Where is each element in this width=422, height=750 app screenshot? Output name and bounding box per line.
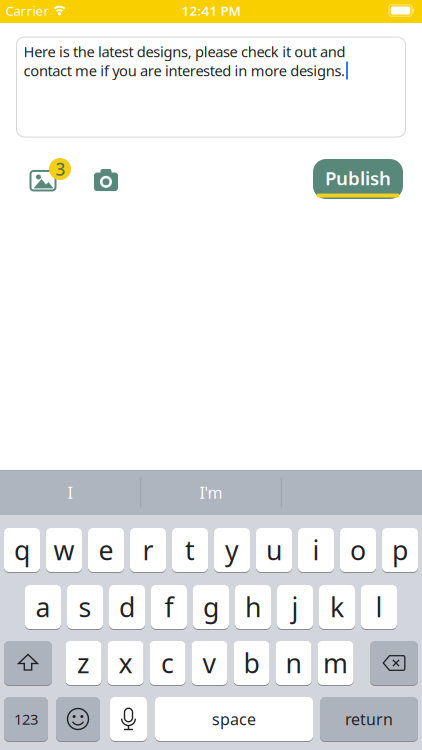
staticText: r (142, 532, 153, 568)
button[interactable]: y (214, 528, 250, 572)
staticText: z (77, 645, 90, 681)
staticText: h (245, 589, 261, 625)
button[interactable]: c (149, 641, 185, 685)
staticText: x (118, 645, 132, 681)
button[interactable]: w (46, 528, 82, 572)
staticText: q (14, 532, 30, 568)
button[interactable]: h (235, 585, 271, 629)
staticText: I (67, 482, 72, 503)
staticText: 12:41 PM (181, 2, 240, 19)
button[interactable]: p (382, 528, 418, 572)
button[interactable]: 3 (30, 158, 72, 191)
button[interactable]: t (172, 528, 208, 572)
staticText: contact me if you are interested in more… (23, 61, 345, 80)
button[interactable]: n (275, 641, 311, 685)
button[interactable] (110, 697, 147, 741)
button[interactable]: return (320, 697, 418, 741)
staticText: b (243, 645, 259, 681)
staticText: t (185, 532, 195, 568)
staticText: g (203, 589, 219, 625)
button[interactable]: v (191, 641, 227, 685)
staticText: s (78, 589, 91, 625)
button[interactable]: space (155, 697, 313, 741)
button[interactable]: g (193, 585, 229, 629)
staticText: k (330, 589, 344, 625)
button[interactable]: r (130, 528, 166, 572)
staticText: n (285, 645, 301, 681)
staticText: c (161, 645, 174, 681)
staticText: a (35, 589, 50, 625)
staticText: i (312, 532, 319, 568)
staticText: o (350, 532, 366, 568)
button[interactable]: q (4, 528, 40, 572)
staticText: Carrier (5, 2, 49, 19)
button[interactable]: k (319, 585, 355, 629)
staticText: 3 (55, 157, 65, 180)
button[interactable]: f (151, 585, 187, 629)
button[interactable] (56, 697, 100, 741)
button[interactable]: a (25, 585, 61, 629)
staticText: m (323, 645, 348, 681)
button[interactable]: Publish (313, 159, 403, 199)
button[interactable]: o (340, 528, 376, 572)
button[interactable]: z (65, 641, 101, 685)
staticText: l (375, 589, 382, 625)
staticText: Publish (325, 166, 391, 190)
button[interactable]: e (88, 528, 124, 572)
button[interactable]: I (0, 470, 140, 515)
button[interactable]: m (317, 641, 353, 685)
staticText: j (291, 589, 298, 625)
button[interactable]: s (67, 585, 103, 629)
button[interactable] (94, 169, 118, 191)
staticText: d (119, 589, 135, 625)
button[interactable]: I'm (141, 470, 281, 515)
button[interactable]: x (107, 641, 143, 685)
button[interactable] (370, 641, 418, 685)
button[interactable]: i (298, 528, 334, 572)
staticText: space (212, 708, 256, 730)
button[interactable]: d (109, 585, 145, 629)
staticText: return (345, 708, 393, 730)
staticText: v (202, 645, 216, 681)
button[interactable] (4, 641, 52, 685)
button[interactable]: b (233, 641, 269, 685)
staticText: 123 (14, 709, 38, 729)
staticText: p (392, 532, 408, 568)
staticText: f (164, 589, 173, 625)
button[interactable]: l (361, 585, 397, 629)
staticText: u (266, 532, 282, 568)
staticText: e (98, 532, 113, 568)
staticText: Here is the latest designs, please check… (23, 42, 345, 61)
staticText: I'm (199, 482, 222, 503)
button[interactable]: 123 (4, 697, 48, 741)
staticText: y (225, 532, 239, 568)
staticText: w (53, 532, 74, 568)
button[interactable]: u (256, 528, 292, 572)
button[interactable]: j (277, 585, 313, 629)
